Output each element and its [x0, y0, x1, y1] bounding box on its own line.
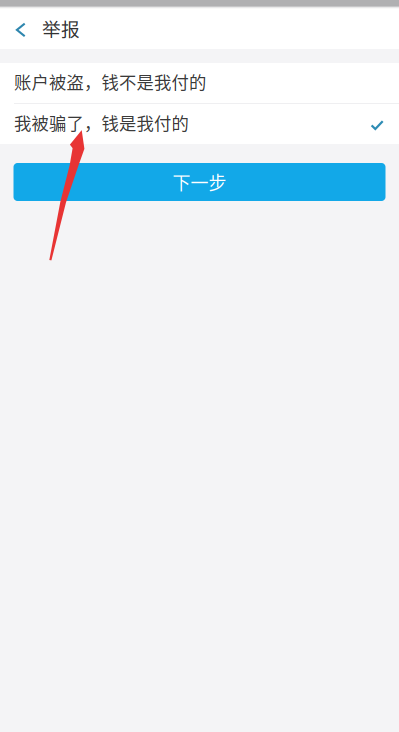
button[interactable]: 账户被盗，钱不是我付的 — [0, 63, 399, 103]
button[interactable]: 我被骗了，钱是我付的 — [0, 104, 399, 144]
button[interactable]: Back — [6, 9, 36, 49]
staticText: 我被骗了，钱是我付的 — [14, 110, 188, 135]
staticText: 举报 — [42, 14, 80, 41]
staticText: 下一步 — [172, 169, 226, 195]
staticText: 账户被盗，钱不是我付的 — [14, 69, 206, 94]
button[interactable]: 下一步 — [13, 163, 385, 201]
